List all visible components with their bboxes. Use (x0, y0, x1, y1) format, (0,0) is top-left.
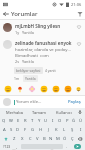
staticText: Ç (71, 136, 74, 142)
button[interactable]: T (29, 117, 35, 124)
button[interactable]: O (57, 117, 63, 124)
button[interactable]: Ü (78, 117, 84, 124)
staticText: X (21, 136, 24, 142)
staticText: C (29, 136, 32, 142)
button[interactable]: Back (0, 8, 11, 19)
button[interactable]: L (61, 126, 68, 133)
button[interactable]: Y (36, 117, 42, 124)
staticText: 4 yanit (45, 68, 56, 73)
button[interactable]: Shift (1, 135, 10, 142)
staticText: M (56, 136, 60, 142)
staticText: D (16, 127, 20, 133)
button[interactable]: Emoji (40, 85, 48, 93)
staticText: Ş (71, 127, 74, 133)
staticText: V (36, 136, 39, 142)
button[interactable]: E (15, 117, 21, 124)
staticText: ?123 (3, 144, 11, 149)
button[interactable]: I (50, 117, 56, 124)
button[interactable]: Ş (69, 126, 76, 133)
staticText: Merhaba (6, 110, 23, 115)
button[interactable]: B (41, 135, 47, 142)
button[interactable]: H (37, 126, 44, 133)
staticText: bekliyor sayfasi (16, 68, 41, 73)
button[interactable]: P (64, 117, 70, 124)
button[interactable]: Emoji (28, 85, 36, 93)
staticText: . (66, 144, 68, 149)
button[interactable]: Period (64, 144, 70, 149)
button[interactable]: C (27, 135, 33, 142)
button[interactable]: zelinade fanushasi enyok (0, 37, 85, 66)
button[interactable]: Paylaş (67, 98, 82, 106)
button[interactable]: Backspace (76, 135, 84, 142)
button[interactable]: G (29, 126, 36, 133)
button[interactable]: M (55, 135, 61, 142)
staticText: Yorumlar (11, 10, 38, 18)
staticText: P (66, 118, 69, 124)
button[interactable]: Emoji (52, 85, 60, 93)
staticText: N (49, 136, 53, 142)
button[interactable]: Emoji (76, 85, 81, 93)
button[interactable]: Send (71, 144, 84, 149)
button[interactable]: Q (1, 117, 7, 124)
button[interactable]: R (22, 117, 28, 124)
button[interactable]: W (8, 117, 14, 124)
staticText: mjLmbH Sling yilesn (15, 23, 61, 29)
staticText: A (3, 127, 6, 133)
staticText: 1y Yanitla (15, 30, 34, 35)
staticText: Kullanıcı (56, 110, 72, 115)
staticText: Y (38, 118, 41, 124)
staticText: E (17, 118, 20, 124)
button[interactable]: K (53, 126, 60, 133)
button[interactable]: Like (75, 40, 82, 47)
staticText: U (44, 118, 48, 124)
staticText: Yorum ekle... (16, 99, 42, 105)
button[interactable]: Ğ (71, 117, 77, 124)
staticText: B (43, 136, 46, 142)
button[interactable]: A (1, 126, 7, 133)
staticText: zelinade fanushasi enyok (15, 40, 72, 46)
staticText: S (10, 127, 13, 133)
button[interactable]: Emoji (4, 85, 12, 93)
button[interactable]: Voice input (76, 110, 83, 114)
staticText: K (55, 127, 58, 133)
button[interactable]: D (15, 126, 21, 133)
staticText: Paylaş (68, 99, 81, 105)
button[interactable]: Emoji (64, 85, 72, 93)
button[interactable]: I (77, 126, 84, 133)
staticText: W (9, 118, 13, 124)
staticText: O (58, 118, 62, 124)
staticText: Tamam (32, 110, 46, 115)
button[interactable]: X (19, 135, 26, 142)
button[interactable]: S (8, 126, 14, 133)
staticText: Ü (79, 118, 83, 124)
button[interactable]: Filter (74, 8, 85, 19)
button[interactable]: Ö (62, 135, 68, 142)
staticText: F (24, 127, 27, 133)
button[interactable]: Merhaba (2, 110, 26, 115)
button[interactable]: ?123 (1, 144, 13, 149)
staticText: I (52, 118, 54, 124)
button[interactable]: J (45, 126, 52, 133)
staticText: Q (2, 118, 6, 124)
button[interactable]: Yorum ekle... (14, 99, 67, 105)
staticText: H (39, 127, 43, 133)
staticText: Z (13, 136, 16, 142)
staticText: Bimadhvati com (15, 52, 49, 58)
button[interactable]: Z (11, 135, 18, 142)
button[interactable]: Ç (69, 135, 75, 142)
button[interactable]: F (22, 126, 28, 133)
button[interactable]: Emoji (16, 85, 24, 93)
button[interactable]: Tamam (26, 110, 51, 115)
button[interactable]: V (34, 135, 40, 142)
button[interactable]: mjLmbH Sling yilesn (0, 20, 85, 37)
staticText: G (31, 127, 35, 133)
button[interactable]: N (48, 135, 54, 142)
button[interactable]: Comma (14, 144, 20, 149)
button[interactable]: Like (75, 23, 82, 30)
staticText: 2s Yanitla (15, 59, 34, 64)
button[interactable]: Kullanıcı (51, 110, 76, 115)
staticText: J (48, 127, 50, 133)
staticText: T (31, 118, 34, 124)
button[interactable]: U (43, 117, 49, 124)
